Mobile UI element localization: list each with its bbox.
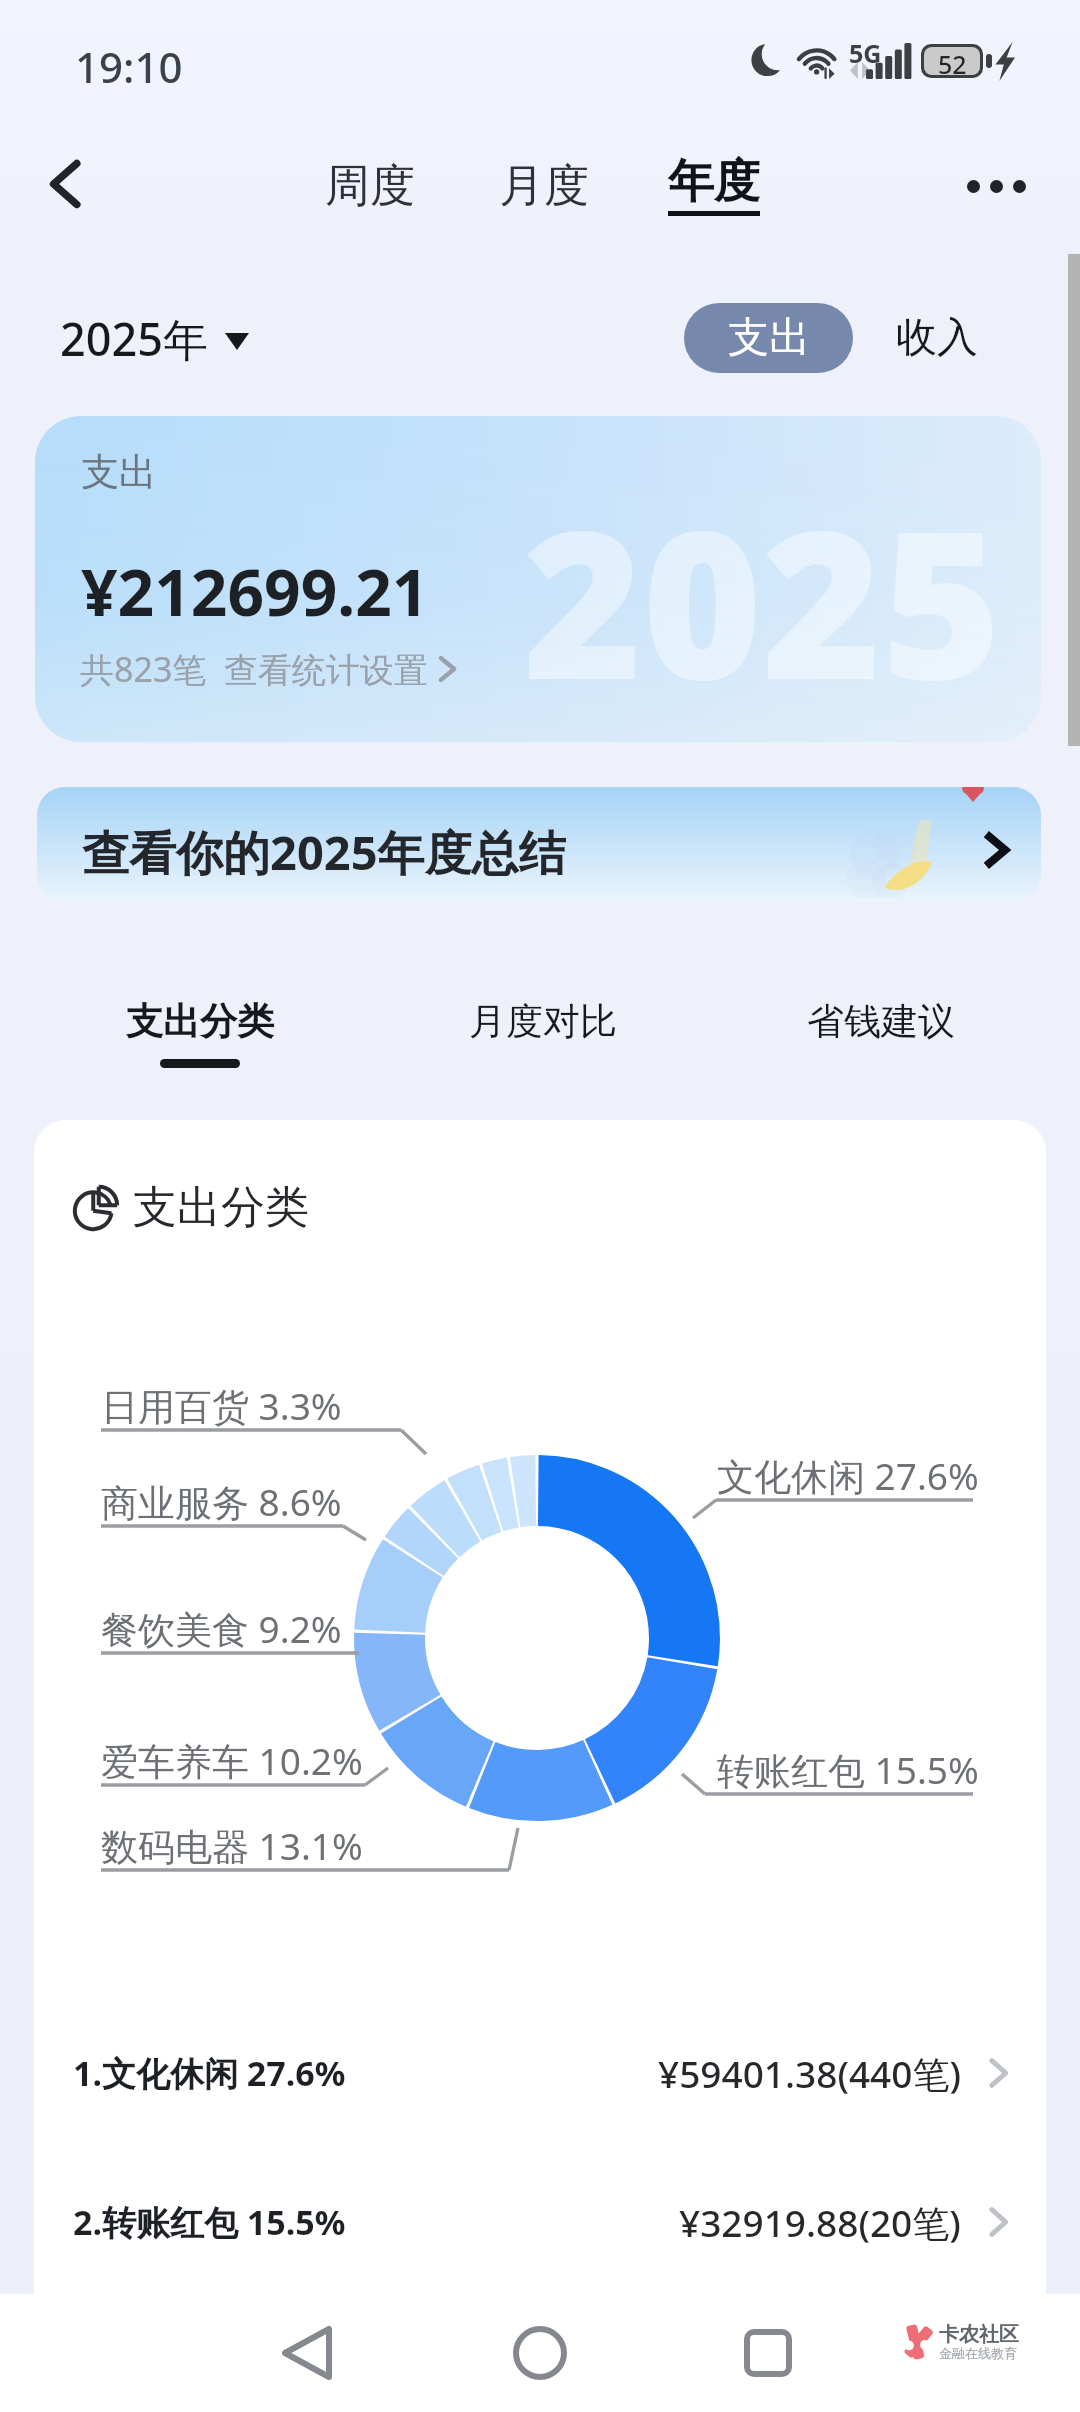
staticText: 日用百货 3.3% [101, 1380, 342, 1431]
staticText: 支出分类 [133, 1180, 309, 1235]
staticText: 支出分类 [126, 998, 274, 1045]
button[interactable]: 周度 [311, 144, 429, 229]
button[interactable]: 查看你的2025年度总结 [37, 787, 1041, 902]
staticText: 支出 [728, 312, 810, 364]
staticText: 1.文化休闲 27.6% [73, 2050, 346, 2096]
staticText: ¥212699.21 [81, 548, 429, 635]
button[interactable]: 支出分类 [80, 998, 320, 1088]
button[interactable]: Recent apps [720, 2305, 816, 2401]
staticText: 年度 [668, 153, 760, 211]
staticText: ¥59401.38(440笔) [658, 2048, 961, 2099]
button[interactable]: 2025 [35, 416, 1041, 742]
button[interactable]: 月度 [485, 144, 603, 229]
button[interactable]: 月度对比 [423, 998, 663, 1088]
staticText: 金融在线教育 [939, 2345, 1017, 2361]
staticText: 5G [849, 36, 882, 70]
staticText: 52 [938, 47, 967, 75]
staticText: 数码电器 13.1% [101, 1820, 363, 1871]
staticText: 收入 [896, 312, 978, 364]
staticText: 卡农社区 [939, 2322, 1019, 2347]
staticText: 月度 [499, 158, 589, 215]
staticText: 查看你的2025年度总结 [82, 820, 566, 884]
staticText: 省钱建议 [807, 998, 955, 1045]
button[interactable]: Back [260, 2305, 356, 2401]
staticText: 文化休闲 27.6% [717, 1450, 979, 1501]
staticText: 19:10 [75, 38, 183, 95]
button[interactable]: 年度 [654, 139, 774, 230]
button[interactable]: 支出 [684, 303, 853, 373]
button[interactable]: 1.文化休闲 27.6% [34, 2021, 1046, 2125]
button[interactable]: 2.转账红包 15.5% [34, 2170, 1046, 2274]
staticText: 共823笔 查看统计设置 [80, 646, 429, 692]
staticText: 转账红包 15.5% [717, 1744, 979, 1795]
staticText: ¥32919.88(20笔) [679, 2197, 961, 2248]
staticText: 月度对比 [469, 998, 617, 1045]
staticText: 支出 [81, 448, 157, 496]
staticText: 餐饮美食 9.2% [101, 1603, 342, 1654]
button[interactable]: More options [952, 142, 1040, 230]
button[interactable]: Home [492, 2305, 588, 2401]
staticText: 2025 [523, 461, 1002, 739]
button[interactable]: 2025年 [60, 300, 249, 376]
staticText: 周度 [325, 158, 415, 215]
button[interactable]: 省钱建议 [761, 998, 1001, 1088]
staticText: 商业服务 8.6% [101, 1476, 342, 1527]
button[interactable]: Back [22, 140, 110, 228]
staticText: 爱车养车 10.2% [101, 1735, 363, 1786]
staticText: 2.转账红包 15.5% [73, 2199, 346, 2245]
button[interactable]: 收入 [877, 303, 997, 373]
staticText: 2025年 [60, 308, 208, 369]
